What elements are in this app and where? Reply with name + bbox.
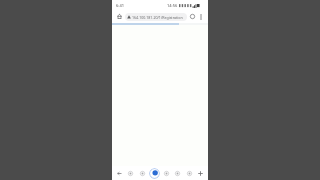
button[interactable]: More options	[197, 13, 205, 21]
button[interactable]: Home	[115, 12, 124, 21]
staticText: 14:56	[167, 3, 178, 8]
button[interactable]: Apps	[162, 169, 171, 178]
staticText: 164.100.181.20/1/Registration	[132, 15, 183, 20]
button[interactable]: Tab	[126, 169, 135, 178]
button[interactable]: Settings	[185, 169, 194, 178]
staticText: 6:41	[116, 3, 124, 8]
button[interactable]: 164.100.181.20/1/Registration	[125, 13, 187, 21]
button[interactable]: Reload	[188, 12, 197, 21]
button[interactable]: New tab	[196, 169, 205, 178]
button[interactable]: Back	[115, 169, 124, 178]
button[interactable]: Bookmarks	[138, 169, 147, 178]
button[interactable]: Browser	[149, 168, 160, 179]
button[interactable]: Downloads	[173, 169, 182, 178]
